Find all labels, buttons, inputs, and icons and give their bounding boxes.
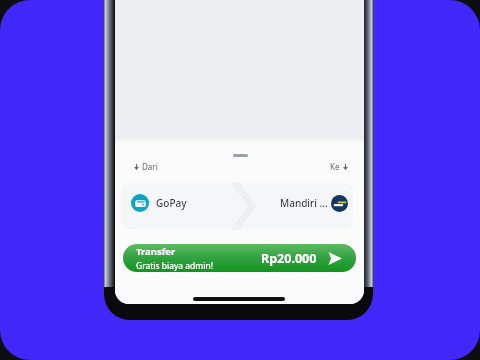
staticText: Mandiri ... (280, 196, 328, 210)
button[interactable]: Transfer (123, 244, 356, 272)
other: Send (328, 252, 342, 265)
staticText: Ke (330, 161, 340, 172)
button[interactable]: GoPay (121, 183, 237, 229)
staticText: GoPay (156, 196, 187, 210)
staticText: Gratis biaya admin! (136, 260, 214, 272)
staticText: Transfer (136, 245, 176, 258)
button[interactable]: Ke (330, 160, 349, 173)
button[interactable]: Mandiri ... (237, 183, 353, 229)
button[interactable]: Dari (133, 160, 158, 173)
staticText: Rp20.000 (261, 250, 317, 267)
staticText: Dari (142, 161, 158, 172)
